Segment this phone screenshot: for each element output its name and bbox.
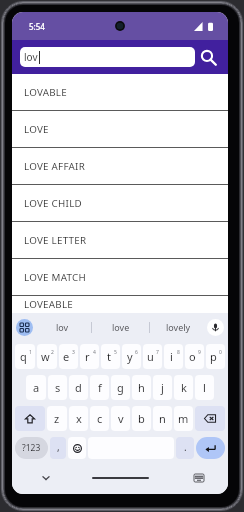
staticText: e bbox=[63, 349, 70, 364]
staticText: d bbox=[75, 380, 82, 395]
button[interactable]: love bbox=[92, 313, 149, 341]
staticText: 4 bbox=[93, 349, 96, 356]
staticText: y bbox=[127, 349, 133, 364]
staticText: LOVE CHILD bbox=[24, 197, 82, 210]
staticText: f bbox=[98, 380, 102, 395]
staticText: lovely bbox=[166, 321, 191, 333]
button[interactable]: Emoji bbox=[68, 437, 86, 459]
staticText: t bbox=[107, 349, 111, 364]
staticText: 3 bbox=[72, 349, 75, 356]
button[interactable]: Shift bbox=[15, 406, 45, 431]
staticText: lov bbox=[56, 321, 69, 333]
staticText: s bbox=[55, 380, 61, 395]
staticText: m bbox=[178, 411, 189, 426]
staticText: ?123 bbox=[22, 442, 41, 454]
staticText: g bbox=[117, 380, 124, 395]
button[interactable]: , bbox=[50, 437, 66, 459]
button[interactable]: q bbox=[15, 344, 35, 369]
button[interactable]: j bbox=[153, 375, 172, 400]
button[interactable]: l bbox=[195, 375, 214, 400]
button[interactable]: Backspace bbox=[195, 406, 225, 431]
staticText: 8 bbox=[177, 349, 180, 356]
button[interactable]: k bbox=[174, 375, 193, 400]
staticText: , bbox=[57, 440, 60, 454]
button[interactable]: f bbox=[90, 375, 109, 400]
staticText: j bbox=[161, 380, 164, 395]
button[interactable]: y bbox=[122, 344, 141, 369]
staticText: LOVE MATCH bbox=[24, 271, 87, 284]
staticText: v bbox=[118, 411, 124, 426]
button[interactable]: z bbox=[47, 406, 67, 431]
staticText: 6 bbox=[135, 349, 138, 356]
button[interactable]: LOVE bbox=[12, 111, 228, 147]
staticText: n bbox=[159, 411, 166, 426]
button[interactable]: c bbox=[90, 406, 109, 431]
button[interactable]: p bbox=[206, 344, 225, 369]
button[interactable]: LOVE AFFAIR bbox=[12, 148, 228, 184]
staticText: x bbox=[76, 411, 82, 426]
staticText: LOVEABLE bbox=[24, 298, 74, 311]
staticText: p bbox=[210, 349, 217, 364]
staticText: h bbox=[138, 380, 145, 395]
button[interactable]: Keyboard apps bbox=[16, 319, 33, 336]
button[interactable]: Search bbox=[196, 45, 220, 69]
staticText: a bbox=[33, 380, 40, 395]
button[interactable]: e bbox=[59, 344, 78, 369]
staticText: q bbox=[20, 349, 27, 364]
button[interactable]: h bbox=[132, 375, 151, 400]
button[interactable]: b bbox=[132, 406, 151, 431]
button[interactable]: w bbox=[37, 344, 57, 369]
button[interactable]: m bbox=[174, 406, 193, 431]
staticText: 5 bbox=[114, 349, 117, 356]
button[interactable]: Change keyboard bbox=[190, 469, 208, 487]
button[interactable]: LOVABLE bbox=[12, 74, 228, 110]
button[interactable]: a bbox=[26, 375, 46, 400]
button[interactable]: s bbox=[48, 375, 67, 400]
button[interactable]: g bbox=[111, 375, 130, 400]
staticText: 5:54 bbox=[29, 21, 45, 32]
staticText: LOVE bbox=[24, 123, 49, 136]
button[interactable]: Hide keyboard bbox=[36, 468, 56, 488]
button[interactable]: ?123 bbox=[15, 437, 48, 459]
button[interactable]: lovely bbox=[150, 313, 207, 341]
button[interactable]: LOVE CHILD bbox=[12, 185, 228, 221]
staticText: love bbox=[112, 321, 130, 333]
button[interactable]: x bbox=[69, 406, 88, 431]
staticText: o bbox=[189, 349, 196, 364]
button[interactable]: r bbox=[80, 344, 99, 369]
button[interactable]: Voice input bbox=[207, 319, 224, 336]
button[interactable]: v bbox=[111, 406, 130, 431]
staticText: . bbox=[184, 440, 187, 454]
staticText: 0 bbox=[219, 349, 222, 356]
staticText: l bbox=[203, 380, 206, 395]
staticText: 2 bbox=[51, 349, 54, 356]
button[interactable]: u bbox=[143, 344, 162, 369]
staticText: z bbox=[54, 411, 60, 426]
staticText: LOVABLE bbox=[24, 86, 67, 99]
staticText: b bbox=[138, 411, 145, 426]
button[interactable]: i bbox=[164, 344, 183, 369]
button[interactable]: LOVE LETTER bbox=[12, 222, 228, 258]
staticText: u bbox=[147, 349, 154, 364]
button[interactable]: Enter bbox=[196, 437, 225, 459]
button[interactable]: d bbox=[69, 375, 88, 400]
button[interactable]: . bbox=[176, 437, 194, 459]
staticText: LOVE LETTER bbox=[24, 234, 87, 247]
staticText: 7 bbox=[156, 349, 159, 356]
staticText: w bbox=[41, 349, 50, 364]
button[interactable]: LOVE MATCH bbox=[12, 259, 228, 295]
staticText: r bbox=[85, 349, 90, 364]
button[interactable]: lov bbox=[20, 47, 195, 67]
staticText: 9 bbox=[198, 349, 201, 356]
button[interactable]: n bbox=[153, 406, 172, 431]
staticText: i bbox=[170, 349, 173, 364]
button[interactable]: lov bbox=[33, 313, 91, 341]
staticText: lov bbox=[24, 50, 38, 64]
staticText: k bbox=[181, 380, 187, 395]
staticText: LOVE AFFAIR bbox=[24, 160, 86, 173]
staticText: c bbox=[97, 411, 103, 426]
button[interactable]: t bbox=[101, 344, 120, 369]
button[interactable]: o bbox=[185, 344, 204, 369]
button[interactable]: LOVEABLE bbox=[12, 296, 228, 313]
